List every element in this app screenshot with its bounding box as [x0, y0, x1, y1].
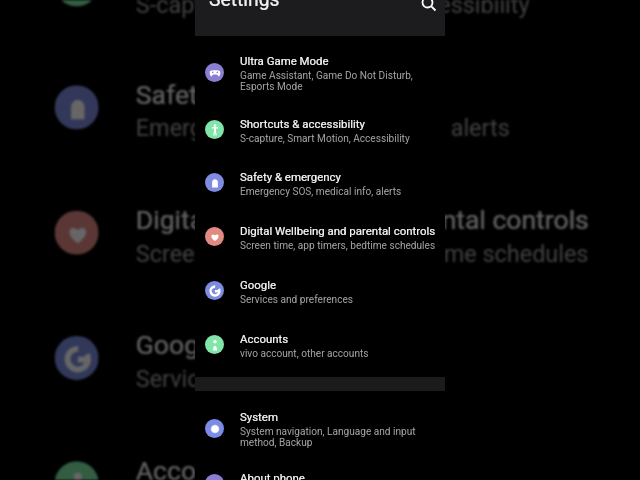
staticText: System navigation, Language and input [240, 426, 416, 438]
staticText: About phone [240, 471, 305, 480]
staticText: Emergency SOS, medical info, alerts [240, 186, 402, 198]
staticText: Emergency SOS, medical info, alerts [136, 115, 512, 143]
staticText: Game Assistant, Game Do Not Disturb, [240, 70, 413, 82]
staticText: S-capture, Smart Motion, Accessibility [136, 0, 530, 20]
staticText: vivo account, other accounts [240, 348, 369, 360]
button[interactable]: Digital Wellbeing and parental controls [195, 218, 445, 255]
button[interactable]: Shortcuts & accessibility [195, 111, 445, 148]
staticText: Google [136, 329, 222, 359]
staticText: Screen time, app timers, bedtime schedul… [136, 241, 590, 269]
button[interactable]: About phone [195, 465, 445, 480]
button[interactable]: Ultra Game Mode [195, 48, 445, 96]
button[interactable]: Google [31, 315, 611, 401]
staticText: Google [240, 278, 277, 291]
button[interactable]: Digital Wellbeing and parental controls [31, 190, 611, 276]
button[interactable]: Safety & emergency [31, 64, 611, 150]
staticText: Digital Wellbeing and parental controls [136, 204, 590, 234]
staticText: Accounts [240, 332, 289, 345]
button[interactable]: Shortcuts & accessibility [31, 0, 611, 27]
staticText: S-capture, Smart Motion, Accessibility [240, 133, 410, 145]
button[interactable]: Search [418, 0, 442, 15]
staticText: Safety & emergency [136, 78, 370, 109]
staticText: Ultra Game Mode [240, 54, 329, 67]
button[interactable]: Google [195, 272, 445, 309]
staticText: Esports Mode [240, 81, 303, 93]
button[interactable]: Safety & emergency [195, 164, 445, 201]
staticText: Accounts [136, 454, 249, 480]
staticText: method, Backup [240, 437, 313, 449]
staticText: Services and preferences [240, 294, 353, 306]
staticText: Shortcuts & accessibility [240, 117, 366, 130]
staticText: Settings [209, 0, 280, 11]
staticText: Safety & emergency [240, 170, 341, 183]
button[interactable]: Accounts [31, 440, 611, 480]
staticText: Services and preferences [136, 366, 398, 394]
button[interactable]: System [195, 404, 445, 452]
button[interactable]: Accounts [195, 326, 445, 363]
staticText: Digital Wellbeing and parental controls [240, 224, 436, 237]
staticText: System [240, 410, 278, 423]
staticText: Screen time, app timers, bedtime schedul… [240, 240, 436, 252]
